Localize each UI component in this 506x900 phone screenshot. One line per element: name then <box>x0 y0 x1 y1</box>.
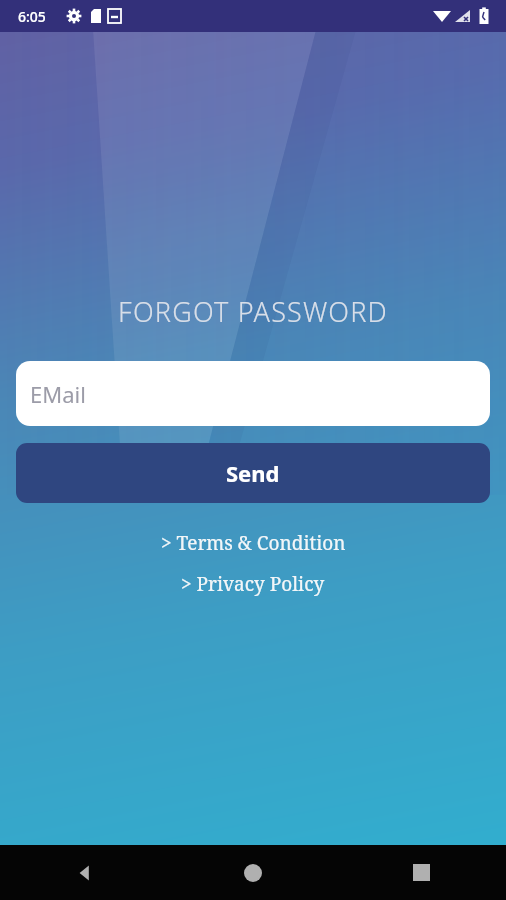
button[interactable]: Back <box>0 845 168 900</box>
staticText: 6:05 <box>18 7 46 26</box>
staticText: FORGOT PASSWORD <box>118 293 388 330</box>
staticText: > Terms & Condition <box>161 530 346 556</box>
button[interactable]: Send <box>16 443 490 503</box>
button[interactable]: EMail <box>16 361 490 426</box>
button[interactable]: Recent apps <box>337 845 506 900</box>
staticText: Send <box>226 458 280 488</box>
button[interactable]: Home <box>168 845 337 900</box>
button[interactable]: > Terms & Condition <box>155 529 352 557</box>
staticText: EMail <box>30 379 86 409</box>
staticText: > Privacy Policy <box>181 571 325 597</box>
button[interactable]: > Privacy Policy <box>175 570 331 598</box>
